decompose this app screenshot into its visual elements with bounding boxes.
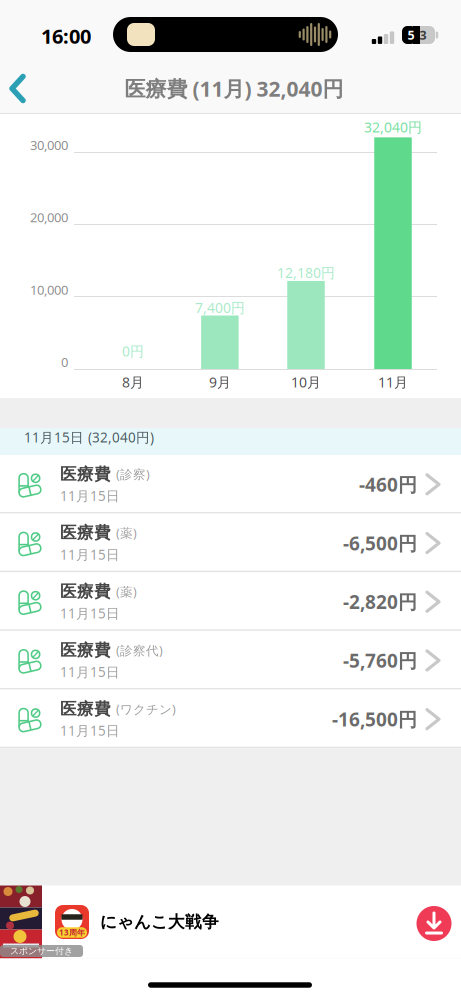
staticText: 医療費	[60, 640, 111, 661]
staticText: -5,760円	[343, 647, 417, 673]
staticText: 11月15日	[60, 486, 120, 505]
staticText: 11月	[378, 372, 408, 392]
staticText: -16,500円	[332, 706, 417, 732]
button[interactable]: Back	[2, 66, 33, 110]
staticText: 0円	[122, 341, 144, 361]
staticText: にゃんこ大戦争	[100, 912, 219, 932]
staticText: -460円	[359, 471, 417, 497]
staticText: 医療費 (11月) 32,040円	[124, 74, 343, 103]
staticText: (診察代)	[116, 642, 163, 659]
staticText: (診察)	[116, 466, 150, 483]
button[interactable]: 医療費	[0, 572, 461, 631]
staticText: 医療費	[60, 699, 111, 719]
staticText: 11月15日	[60, 663, 120, 681]
staticText: 11月15日 (32,040円)	[24, 428, 154, 446]
staticText: (薬)	[116, 583, 137, 600]
staticText: 10月	[291, 372, 321, 392]
button[interactable]: 医療費	[0, 690, 461, 748]
staticText: 9月	[209, 372, 231, 392]
button[interactable]: 医療費	[0, 514, 461, 572]
staticText: -6,500円	[343, 530, 417, 556]
staticText: 10,000	[30, 281, 68, 298]
staticText: スポンサー付き	[10, 945, 73, 957]
staticText: -2,820円	[343, 589, 417, 615]
staticText: (ワクチン)	[116, 700, 176, 717]
staticText: 0	[61, 353, 68, 371]
button[interactable]: ダウンロード	[416, 906, 451, 941]
staticText: 13周年	[59, 927, 85, 938]
staticText: 医療費	[60, 522, 111, 543]
staticText: 32,040円	[364, 117, 422, 137]
staticText: 11月15日	[60, 604, 120, 622]
staticText: 11月15日	[60, 545, 120, 564]
staticText: 12,180円	[277, 263, 335, 282]
button[interactable]: 医療費	[0, 631, 461, 690]
staticText: 3	[419, 26, 426, 43]
staticText: 医療費	[60, 581, 111, 602]
staticText: 8月	[122, 372, 144, 392]
staticText: 16:00	[41, 22, 91, 50]
staticText: 20,000	[30, 208, 68, 226]
staticText: 11月15日	[60, 721, 120, 740]
staticText: 5	[407, 26, 414, 43]
staticText: 30,000	[30, 136, 68, 154]
staticText: 7,400円	[195, 298, 245, 317]
staticText: 医療費	[60, 464, 111, 485]
button[interactable]: にゃんこ大戦争 広告	[0, 885, 461, 958]
staticText: (薬)	[116, 524, 137, 541]
button[interactable]: 医療費	[0, 455, 461, 514]
